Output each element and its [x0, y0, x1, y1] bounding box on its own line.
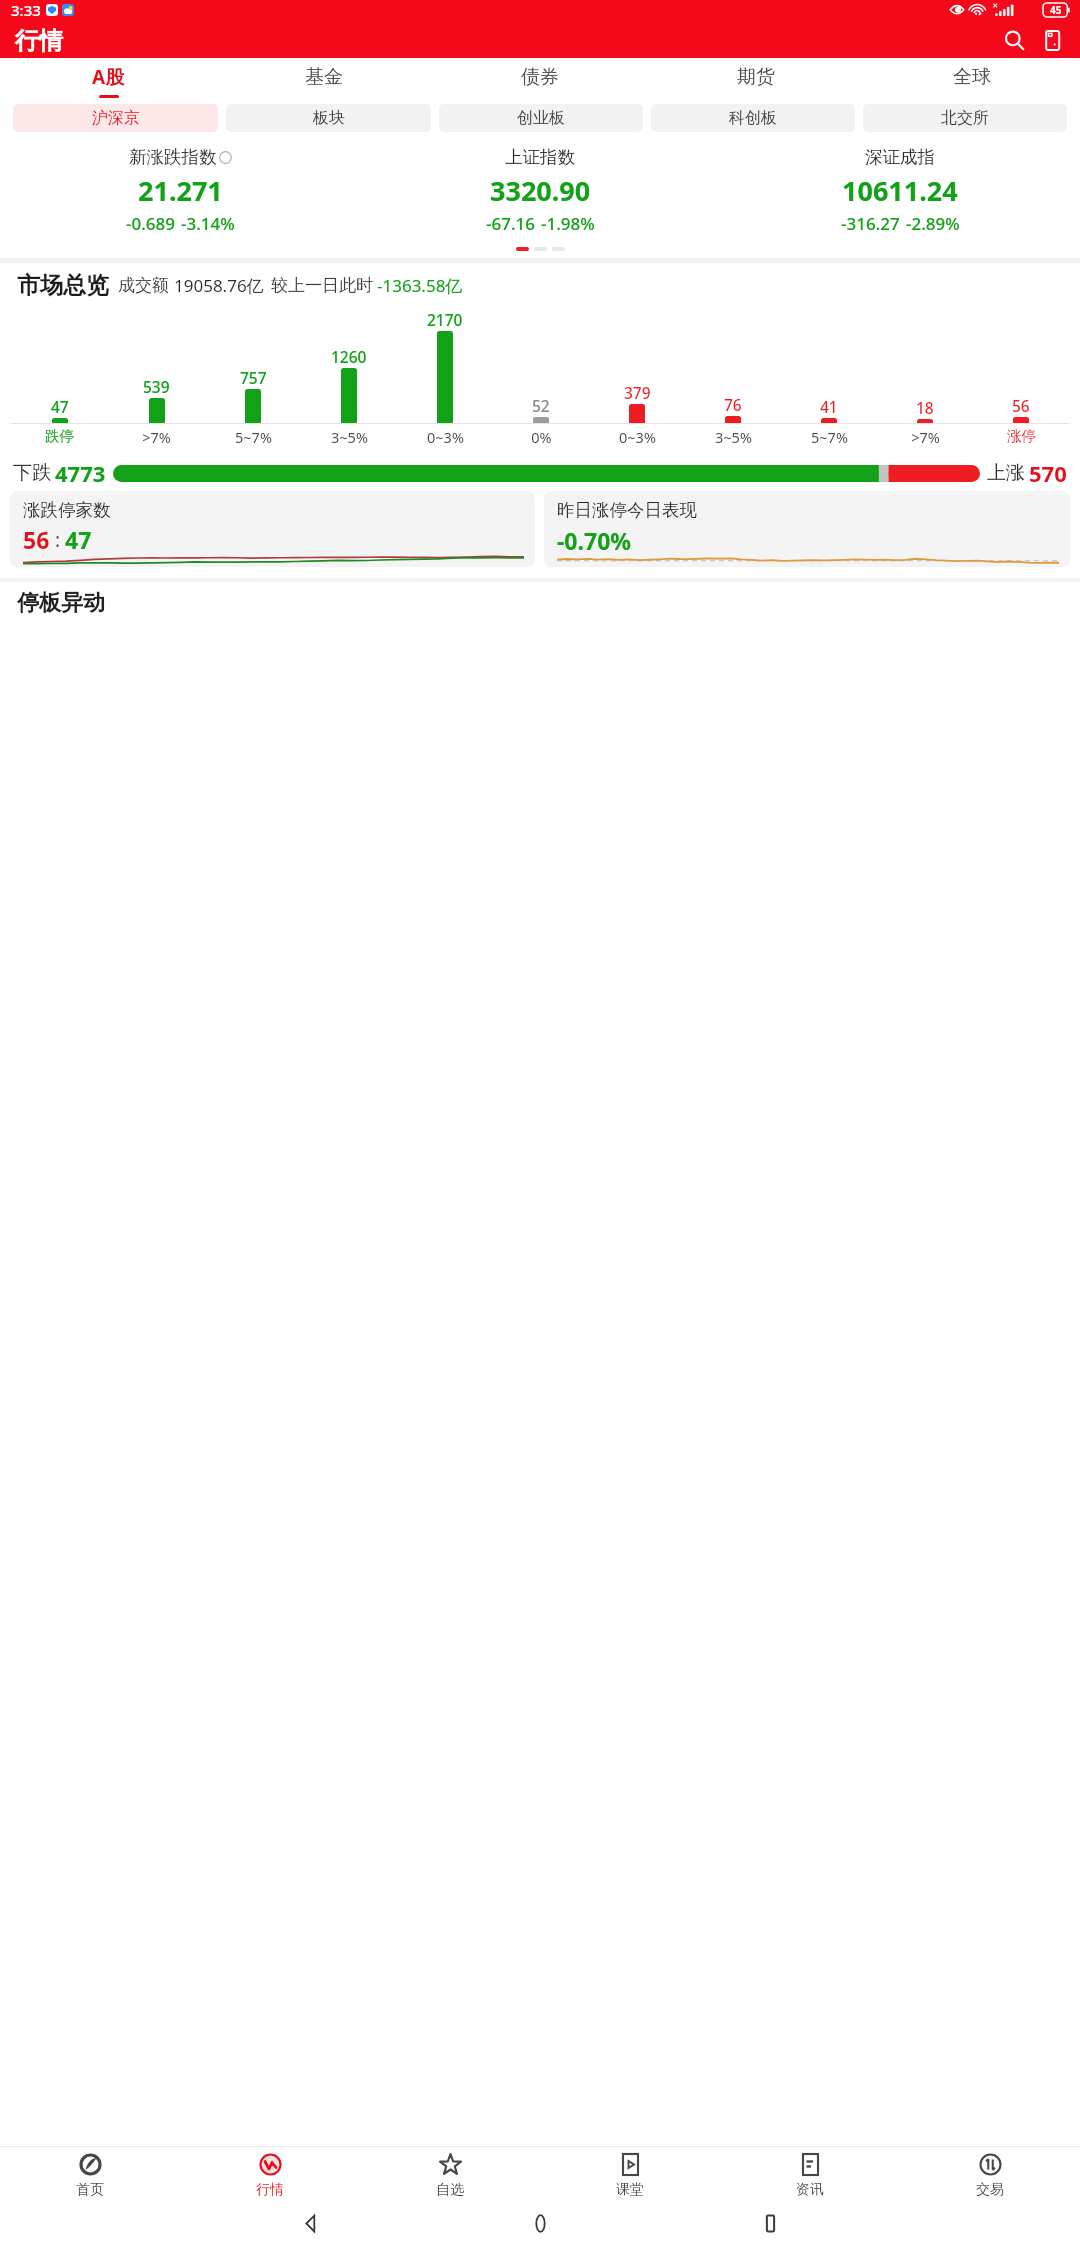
staticText: 41 [820, 396, 838, 417]
staticText: 跌停 [45, 427, 74, 445]
staticText: 科创板 [729, 108, 777, 128]
staticText: 3320.90 [490, 172, 591, 209]
staticText: 涨停 [1007, 427, 1036, 445]
button[interactable]: 交易 [900, 2147, 1080, 2203]
button[interactable]: 北交所 [863, 104, 1067, 132]
staticText: 21.271 [138, 172, 223, 209]
staticText: -316.27 [841, 212, 900, 235]
button[interactable]: Recent apps [655, 2203, 885, 2244]
staticText: -0.689 [126, 212, 175, 235]
staticText: >7% [142, 427, 171, 447]
button[interactable]: 全球 [864, 58, 1080, 99]
staticText: 47 [65, 524, 92, 555]
staticText: 0~3% [619, 427, 656, 447]
staticText: 债券 [521, 65, 559, 89]
staticText: 5~7% [235, 427, 272, 447]
staticText: 379 [624, 382, 651, 403]
staticText: : [50, 527, 65, 553]
staticText: 570 [1029, 458, 1067, 488]
button[interactable]: 沪深京 [13, 104, 218, 132]
staticText: 上涨 [987, 461, 1025, 485]
staticText: 3:33 [11, 0, 41, 20]
button[interactable]: Search [996, 23, 1032, 58]
staticText: -0.70% [557, 525, 632, 556]
staticText: -67.16 [486, 212, 535, 235]
staticText: 首页 [76, 2181, 104, 2199]
staticText: >7% [911, 427, 940, 447]
staticText: 创业板 [517, 108, 565, 128]
staticText: 行情 [15, 26, 63, 56]
staticText: 45 [1050, 3, 1062, 17]
button[interactable]: 板块 [226, 104, 431, 132]
staticText: 0~3% [427, 427, 464, 447]
staticText: 基金 [305, 65, 343, 89]
staticText: -1363.58亿 [377, 274, 463, 297]
button[interactable]: 科创板 [651, 104, 855, 132]
staticText: 行情 [256, 2181, 284, 2199]
staticText: 4773 [55, 458, 106, 488]
staticText: 10611.24 [842, 172, 958, 209]
staticText: 539 [143, 376, 170, 397]
staticText: -3.14% [181, 212, 235, 235]
button[interactable]: 自选 [360, 2147, 540, 2203]
staticText: 18 [916, 397, 934, 418]
staticText: 5~7% [811, 427, 848, 447]
button[interactable]: 停板异动 [0, 582, 1080, 624]
button[interactable]: Back [195, 2203, 425, 2244]
staticText: 交易 [976, 2181, 1004, 2199]
staticText: 深证成指 [865, 146, 935, 168]
button[interactable]: 昨日涨停今日表现 [544, 491, 1070, 567]
staticText: -2.89% [906, 212, 960, 235]
staticText: 0% [531, 427, 552, 447]
button[interactable]: 行情 [180, 2147, 360, 2203]
button[interactable]: 资讯 [720, 2147, 900, 2203]
staticText: 涨跌停家数 [23, 499, 111, 521]
button[interactable]: 首页 [0, 2147, 180, 2203]
staticText: 北交所 [941, 108, 989, 128]
staticText: 3~5% [331, 427, 368, 447]
staticText: 课堂 [616, 2181, 644, 2199]
button[interactable]: 上证指数 [360, 146, 720, 235]
staticText: 停板异动 [17, 589, 105, 617]
staticText: 板块 [313, 108, 345, 128]
button[interactable]: 课堂 [540, 2147, 720, 2203]
button[interactable]: Scan code [1034, 23, 1070, 58]
button[interactable]: 创业板 [439, 104, 643, 132]
button[interactable]: A股 [0, 58, 216, 99]
button[interactable]: 基金 [216, 58, 432, 99]
button[interactable]: 新涨跌指数 [0, 146, 360, 235]
button[interactable]: 期货 [648, 58, 864, 99]
staticText: 757 [240, 367, 267, 388]
staticText: 56 [23, 524, 50, 555]
staticText: 较上一日此时 [271, 275, 373, 296]
staticText: 19058.76亿 [174, 274, 264, 297]
staticText: 下跌 [13, 461, 51, 485]
staticText: 56 [1012, 395, 1030, 416]
button[interactable]: Home [425, 2203, 655, 2244]
staticText: 2170 [427, 309, 463, 330]
staticText: 1260 [331, 346, 367, 367]
staticText: 成交额 [118, 275, 169, 296]
staticText: 全球 [953, 65, 991, 89]
button[interactable]: 涨跌停家数 [10, 491, 535, 567]
staticText: -1.98% [541, 212, 595, 235]
staticText: 资讯 [796, 2181, 824, 2199]
staticText: A股 [92, 64, 125, 90]
staticText: 52 [532, 395, 550, 416]
staticText: 上证指数 [505, 146, 575, 168]
staticText: 自选 [436, 2181, 464, 2199]
staticText: 期货 [737, 65, 775, 89]
staticText: 市场总览 [17, 271, 109, 300]
staticText: 76 [724, 394, 742, 415]
staticText: 新涨跌指数 [129, 146, 217, 168]
button[interactable]: 债券 [432, 58, 648, 99]
staticText: 3~5% [715, 427, 752, 447]
staticText: 47 [51, 396, 69, 417]
button[interactable]: 深证成指 [720, 146, 1080, 235]
staticText: 昨日涨停今日表现 [557, 499, 697, 521]
staticText: 沪深京 [92, 108, 140, 128]
